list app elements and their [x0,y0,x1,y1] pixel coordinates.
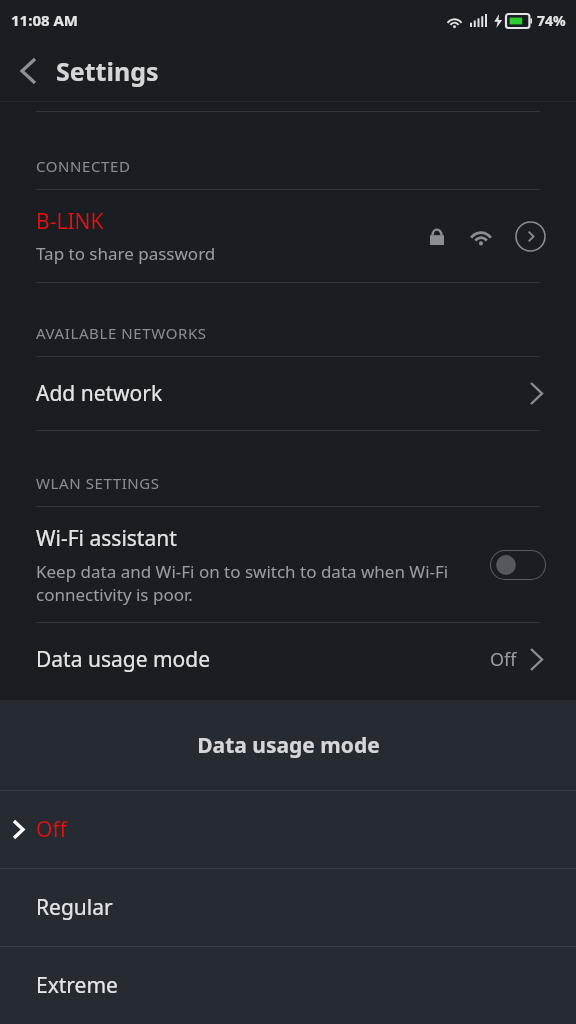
button[interactable]: Back [0,43,56,99]
staticText: Extreme [36,971,118,1000]
button[interactable]: Wi-Fi assistant toggle [490,550,546,580]
button[interactable]: Extreme [0,947,576,1024]
staticText: 74% [537,11,566,30]
staticText: Regular [36,893,113,922]
staticText: Data usage mode [197,731,380,760]
staticText: Off [490,647,517,672]
staticText: Tap to share password [36,242,216,265]
staticText: AVAILABLE NETWORKS [36,323,207,343]
button[interactable]: Add network [0,357,576,431]
button[interactable]: Wi-Fi assistant [0,507,576,623]
staticText: Wi-Fi assistant [36,524,177,553]
button[interactable]: B-LINK [0,190,576,283]
staticText: Off [36,815,67,844]
staticText: Data usage mode [36,645,490,674]
staticText: WLAN SETTINGS [36,473,160,493]
button[interactable]: Data usage mode [0,623,576,696]
button[interactable]: Regular [0,869,576,946]
staticText: B-LINK [36,207,104,236]
staticText: Keep data and Wi-Fi on to switch to data… [36,560,478,606]
staticText: Settings [56,54,159,88]
staticText: CONNECTED [36,156,131,176]
button[interactable]: Off [0,791,576,868]
staticText: 11:08 AM [11,10,78,30]
staticText: Add network [36,379,531,408]
